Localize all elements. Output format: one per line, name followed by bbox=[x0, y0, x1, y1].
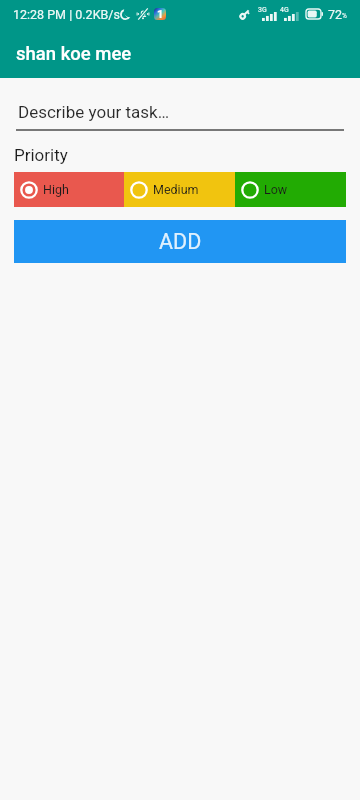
staticText: % bbox=[342, 12, 347, 20]
staticText: ADD bbox=[159, 229, 202, 254]
staticText: 12:28 PM | 0.2KB/s bbox=[13, 7, 120, 22]
staticText: Low bbox=[264, 182, 288, 197]
button[interactable]: High bbox=[14, 172, 124, 207]
staticText: 1 bbox=[157, 8, 164, 20]
staticText: Priority bbox=[14, 145, 68, 165]
staticText: shan koe mee bbox=[16, 43, 132, 65]
staticText: Medium bbox=[153, 182, 199, 197]
staticText: 72 bbox=[328, 7, 343, 22]
staticText: Describe your task… bbox=[18, 102, 170, 122]
button[interactable]: Medium bbox=[124, 172, 235, 207]
staticText: 3G bbox=[258, 6, 267, 14]
button[interactable]: Low bbox=[235, 172, 346, 207]
staticText: 4G bbox=[280, 6, 289, 14]
staticText: High bbox=[43, 182, 69, 197]
button[interactable]: ADD bbox=[14, 220, 346, 263]
